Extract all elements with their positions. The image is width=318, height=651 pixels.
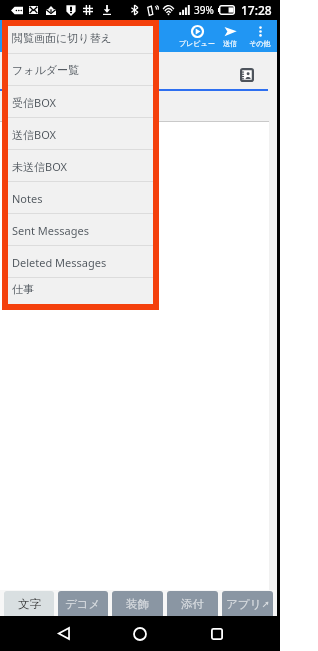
button[interactable]: プレビュー (177, 20, 217, 52)
button[interactable]: 装飾 (112, 591, 163, 616)
button[interactable]: Home (126, 616, 154, 651)
staticText: 装飾 (126, 597, 149, 611)
button[interactable]: Contacts (235, 63, 258, 86)
button[interactable]: Back (50, 616, 78, 651)
button[interactable]: Sent Messages (8, 214, 153, 246)
button[interactable]: 添付 (167, 591, 218, 616)
button[interactable] (0, 122, 277, 590)
staticText: Notes (12, 191, 43, 206)
staticText: Deleted Messages (12, 255, 107, 270)
staticText: 17:28 (241, 2, 272, 18)
staticText: 文字 (18, 597, 41, 611)
button[interactable]: 未送信BOX (8, 150, 153, 182)
staticText: デコメ (65, 597, 101, 611)
staticText: 送信BOX (12, 127, 56, 142)
staticText: 閲覧画面に切り替え (12, 31, 112, 45)
staticText: フォルダー覧 (12, 63, 80, 77)
button[interactable]: Deleted Messages (8, 246, 153, 278)
button[interactable]: 文字 (4, 591, 54, 616)
button[interactable]: その他 (243, 20, 277, 52)
button[interactable]: フォルダー覧 (8, 54, 153, 86)
button[interactable]: アプリ (222, 591, 273, 616)
staticText: 39% (194, 3, 214, 17)
button[interactable]: Notes (8, 182, 153, 214)
staticText: その他 (249, 39, 271, 48)
button[interactable]: 送信BOX (8, 118, 153, 150)
button[interactable]: デコメ (58, 591, 108, 616)
staticText: 受信BOX (12, 95, 56, 110)
button[interactable]: 閲覧画面に切り替え (8, 26, 153, 54)
button[interactable]: 送信 (217, 20, 243, 52)
button[interactable]: 仕事 (8, 278, 153, 300)
staticText: プレビュー (179, 39, 215, 48)
staticText: Sent Messages (12, 223, 89, 238)
staticText: 仕事 (12, 282, 34, 296)
staticText: 未送信BOX (12, 159, 67, 174)
staticText: 添付 (181, 597, 204, 611)
button[interactable]: 受信BOX (8, 86, 153, 118)
staticText: アプリ (226, 597, 262, 611)
staticText: 送信 (223, 39, 237, 48)
button[interactable]: Recents (203, 616, 231, 651)
